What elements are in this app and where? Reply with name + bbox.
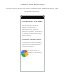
- button[interactable]: Open app: [0, 0, 64, 72]
- staticText: Ut enim ad minim veniam, quis nostrud ex…: [22, 41, 43, 47]
- staticText: Heading for this page: [22, 20, 43, 23]
- staticText: Duis aute irure dolor in reprehenderit i…: [22, 49, 43, 55]
- staticText: Project title goes here: [20, 3, 45, 6]
- staticText: Lorem ipsum dolor sit amet consectetur a…: [4, 7, 60, 12]
- staticText: Lorem ipsum dolor sit amet, consectetur …: [22, 24, 43, 36]
- staticText: Another section here: [22, 38, 41, 40]
